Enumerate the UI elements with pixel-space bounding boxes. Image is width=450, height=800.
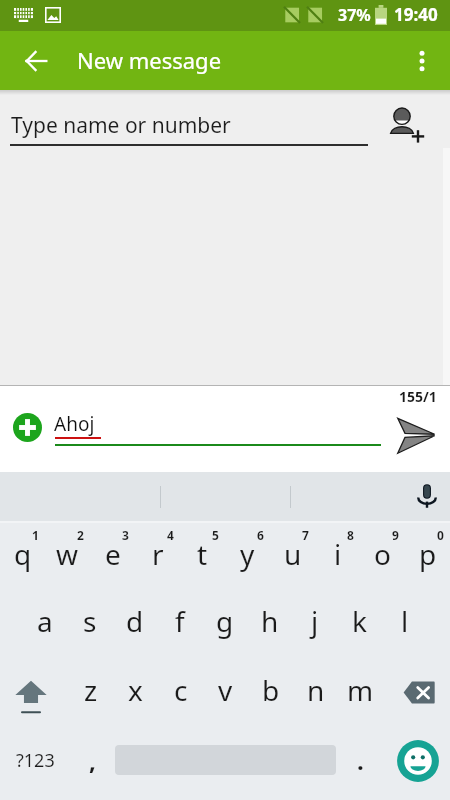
button[interactable]: c — [158, 657, 203, 723]
button[interactable]: j — [292, 588, 337, 654]
button[interactable]: s — [67, 588, 112, 654]
button[interactable]: u — [270, 521, 315, 587]
staticText: 8 — [347, 527, 354, 543]
button[interactable]: v — [203, 657, 248, 723]
button[interactable]: Send — [390, 409, 442, 461]
button[interactable]: k — [337, 588, 382, 654]
button[interactable]: ?123 — [0, 727, 70, 793]
staticText: o — [374, 535, 391, 573]
staticText: 4 — [167, 527, 174, 543]
button[interactable]: m — [338, 657, 383, 723]
staticText: Type name or number — [11, 111, 231, 140]
button[interactable]: Add attachment — [5, 405, 49, 449]
staticText: l — [401, 602, 409, 640]
button[interactable]: o — [360, 521, 405, 587]
staticText: d — [126, 602, 144, 640]
staticText: m — [347, 671, 374, 709]
staticText: 3 — [122, 527, 129, 543]
button[interactable]: More options — [400, 39, 444, 83]
staticText: u — [284, 535, 302, 573]
button[interactable]: a — [22, 588, 67, 654]
button[interactable]: , — [70, 727, 115, 793]
staticText: n — [307, 671, 325, 709]
staticText: h — [261, 602, 279, 640]
staticText: Ahoj — [54, 411, 95, 437]
button[interactable]: h — [247, 588, 292, 654]
staticText: s — [83, 602, 97, 640]
staticText: . — [357, 744, 364, 777]
button[interactable]: z — [68, 657, 113, 723]
staticText: 19:40 — [394, 3, 438, 26]
staticText: z — [84, 671, 98, 709]
button[interactable]: p — [405, 521, 450, 587]
staticText: ?123 — [16, 748, 55, 773]
staticText: a — [37, 602, 53, 640]
staticText: 155/1 — [399, 387, 437, 406]
button[interactable]: l — [382, 588, 427, 654]
button[interactable]: i — [315, 521, 360, 587]
staticText: f — [175, 602, 185, 640]
button[interactable]: Voice input — [407, 476, 447, 516]
button[interactable]: Type name or number — [8, 105, 378, 145]
button[interactable]: w — [45, 521, 90, 587]
button[interactable]: q — [0, 521, 45, 587]
button[interactable]: r — [135, 521, 180, 587]
button[interactable]: Back — [14, 39, 58, 83]
button[interactable]: . — [338, 727, 383, 793]
staticText: p — [419, 535, 437, 573]
button[interactable]: Backspace — [385, 659, 450, 725]
staticText: r — [152, 535, 164, 573]
staticText: e — [105, 535, 121, 573]
staticText: g — [216, 602, 234, 640]
button[interactable]: e — [90, 521, 135, 587]
button[interactable]: Shift — [0, 664, 65, 730]
button[interactable]: g — [202, 588, 247, 654]
staticText: New message — [77, 45, 222, 75]
staticText: j — [311, 602, 319, 640]
staticText: y — [240, 535, 255, 573]
staticText: 9 — [392, 527, 399, 543]
button[interactable]: n — [293, 657, 338, 723]
staticText: , — [89, 744, 96, 777]
button[interactable]: Add contact — [384, 105, 428, 149]
staticText: 1 — [32, 527, 39, 543]
staticText: q — [14, 535, 32, 573]
staticText: x — [128, 671, 143, 709]
staticText: w — [56, 535, 79, 573]
button[interactable]: t — [180, 521, 225, 587]
staticText: 5 — [212, 527, 219, 543]
staticText: t — [197, 535, 208, 573]
staticText: c — [174, 671, 188, 709]
staticText: i — [334, 535, 342, 573]
button[interactable]: f — [157, 588, 202, 654]
button[interactable]: x — [113, 657, 158, 723]
staticText: 6 — [257, 527, 264, 543]
staticText: 7 — [302, 527, 309, 543]
button[interactable]: Emoji — [393, 736, 443, 786]
staticText: k — [352, 602, 367, 640]
staticText: 37% — [338, 4, 371, 26]
button[interactable]: b — [248, 657, 293, 723]
button[interactable]: d — [112, 588, 157, 654]
button[interactable]: y — [225, 521, 270, 587]
staticText: v — [218, 671, 233, 709]
staticText: 0 — [437, 527, 444, 543]
staticText: b — [262, 671, 280, 709]
staticText: 2 — [77, 527, 84, 543]
